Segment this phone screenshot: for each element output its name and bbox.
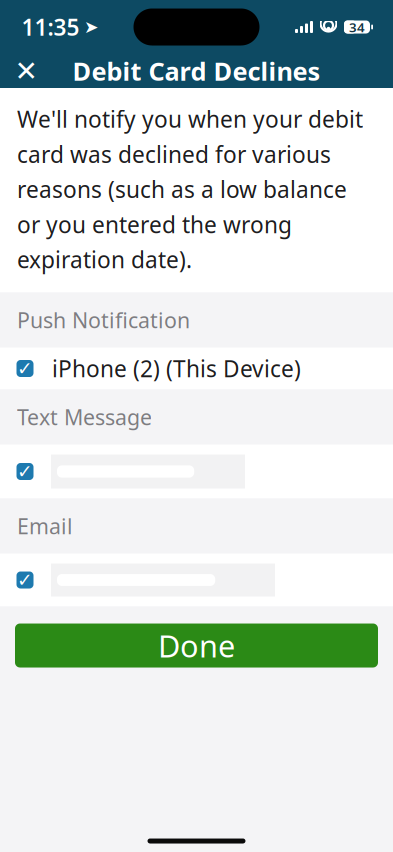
staticText: iPhone (2) (This Device): [52, 353, 301, 384]
staticText: Email: [17, 512, 73, 540]
button[interactable]: ✓: [0, 347, 393, 389]
staticText: Text Message: [17, 403, 152, 431]
staticText: We'll notify you when your debit card wa…: [17, 104, 363, 274]
staticText: Done: [158, 625, 235, 666]
staticText: Push Notification: [17, 306, 190, 334]
staticText: Debit Card Declines: [72, 54, 320, 88]
staticText: ✓: [17, 461, 33, 482]
staticText: ✓: [17, 358, 33, 379]
staticText: ✓: [17, 569, 33, 591]
button[interactable]: Close: [4, 54, 48, 88]
button[interactable]: ✓: [0, 444, 393, 498]
staticText: 11:35: [21, 12, 79, 42]
staticText: ➤: [84, 17, 99, 37]
staticText: ✕: [14, 55, 37, 87]
button[interactable]: Done: [15, 623, 378, 667]
staticText: 34: [349, 18, 365, 36]
button[interactable]: ✓: [0, 553, 393, 606]
